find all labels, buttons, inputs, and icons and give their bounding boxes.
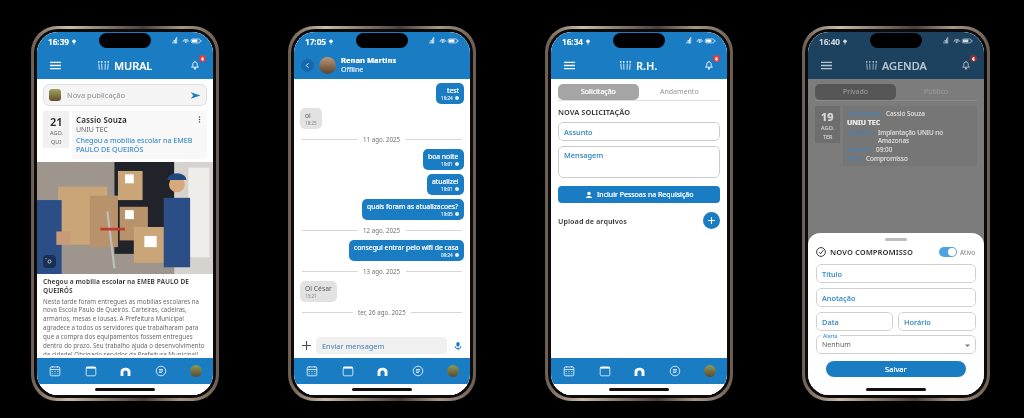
- button[interactable]: Mural: [294, 358, 330, 384]
- button[interactable]: Mural: [37, 358, 73, 384]
- staticText: Chegou a mobilia escolar na EMEB PAULO D…: [43, 277, 207, 295]
- button[interactable]: Notifications: [700, 56, 718, 74]
- staticText: Assunto:: [847, 128, 875, 137]
- staticText: Nesta tarde foram entregues as mobilias …: [43, 297, 207, 355]
- staticText: 18:25: [305, 120, 317, 126]
- button[interactable]: Notifications: [957, 56, 975, 74]
- staticText: Tipo:: [847, 154, 863, 163]
- staticText: Cassio Souza: [76, 114, 127, 125]
- button[interactable]: consegui entrar pelo wifi de casa: [349, 240, 464, 261]
- staticText: test: [447, 86, 459, 95]
- button[interactable]: Perfil: [435, 358, 470, 384]
- button[interactable]: Menu: [560, 56, 578, 74]
- button[interactable]: Anotação: [816, 288, 976, 307]
- staticText: Salvar: [885, 364, 907, 374]
- button[interactable]: Perfil: [692, 358, 727, 384]
- button[interactable]: Perfil: [178, 358, 213, 384]
- staticText: 15:21: [305, 293, 317, 299]
- button[interactable]: Assunto: [558, 122, 720, 141]
- button[interactable]: R.H.: [400, 358, 435, 384]
- button[interactable]: R.H.: [657, 358, 692, 384]
- staticText: Anotação: [822, 293, 856, 303]
- button[interactable]: Agenda: [73, 358, 108, 384]
- staticText: TER: [823, 133, 833, 140]
- button[interactable]: quais foram as atualizacoes?: [362, 199, 464, 220]
- staticText: Incluir Pessoas na Requisição: [597, 190, 694, 200]
- staticText: 4: [972, 56, 975, 62]
- button[interactable]: Agenda: [587, 358, 622, 384]
- staticText: Compromisso: [866, 154, 908, 163]
- button[interactable]: Adicionar arquivo: [703, 212, 720, 229]
- button[interactable]: 21: [43, 111, 207, 159]
- staticText: AGENDA: [882, 58, 927, 73]
- staticText: consegui entrar pelo wifi de casa: [354, 243, 459, 252]
- button[interactable]: Solicitação: [558, 84, 639, 100]
- staticText: Privado: [843, 87, 868, 97]
- staticText: Nenhum: [822, 340, 851, 350]
- button[interactable]: Nenhum: [816, 335, 976, 354]
- button[interactable]: Andamento: [639, 84, 720, 100]
- staticText: 16:39: [48, 36, 69, 47]
- button[interactable]: Incluir Pessoas na Requisição: [558, 186, 720, 203]
- button[interactable]: boa noite: [423, 149, 464, 170]
- button[interactable]: Mensagem: [558, 146, 720, 178]
- button[interactable]: Mural: [551, 358, 587, 384]
- staticText: quais foram as atualizacoes?: [367, 202, 459, 211]
- button[interactable]: atualizei: [427, 174, 464, 195]
- staticText: 17:05: [305, 36, 326, 47]
- staticText: 13 ago. 2025: [363, 267, 401, 275]
- staticText: 19:01: [441, 186, 453, 192]
- staticText: Implantação UNIU no Amazonas: [878, 128, 974, 145]
- staticText: Data: [822, 317, 839, 327]
- button[interactable]: Notifications: [186, 56, 204, 74]
- staticText: AGO.: [821, 124, 834, 131]
- button[interactable]: Salvar: [826, 361, 966, 377]
- button[interactable]: Nova publicação: [43, 84, 207, 106]
- button[interactable]: test: [436, 83, 464, 104]
- button[interactable]: Voltar: [301, 59, 314, 72]
- button[interactable]: Ativo: [939, 247, 957, 257]
- button[interactable]: R.H.: [143, 358, 178, 384]
- staticText: 19: [821, 109, 834, 124]
- staticText: 4: [715, 56, 718, 62]
- button[interactable]: Menu: [46, 56, 64, 74]
- button[interactable]: Público: [896, 84, 977, 100]
- staticText: NOVA SOLICITAÇÃO: [558, 107, 631, 117]
- staticText: UNIU TEC: [76, 125, 108, 135]
- button[interactable]: Horário: [898, 312, 976, 331]
- button[interactable]: Oi César: [300, 281, 337, 302]
- button[interactable]: Gravar áudio: [451, 339, 464, 352]
- button[interactable]: Google Lens: [43, 255, 56, 268]
- staticText: 4: [201, 56, 204, 62]
- button[interactable]: Anexar: [300, 339, 313, 352]
- staticText: 16:40: [819, 36, 840, 47]
- button[interactable]: Data: [816, 312, 893, 331]
- button[interactable]: oi: [300, 108, 322, 129]
- button[interactable]: Agenda: [330, 358, 365, 384]
- button[interactable]: Enviar mensagem: [316, 337, 447, 354]
- staticText: UNIU TEC: [847, 118, 881, 128]
- button[interactable]: Início: [108, 358, 143, 384]
- staticText: 19:05: [441, 211, 453, 217]
- staticText: NOVO COMPROMISSO: [830, 247, 914, 257]
- staticText: Nova publicação: [67, 90, 125, 100]
- staticText: 11 ago. 2025: [363, 135, 401, 143]
- button[interactable]: Mais opções: [194, 114, 204, 124]
- button[interactable]: Título: [816, 264, 976, 283]
- staticText: Horário:: [847, 145, 873, 154]
- staticText: AGO.: [50, 129, 63, 136]
- staticText: Ativo: [960, 248, 976, 257]
- staticText: Cassio Souza: [886, 109, 925, 118]
- button[interactable]: Menu: [817, 56, 835, 74]
- button[interactable]: Início: [365, 358, 400, 384]
- staticText: Andamento: [660, 87, 699, 97]
- staticText: atualizei: [432, 177, 459, 186]
- button[interactable]: Início: [622, 358, 657, 384]
- staticText: Público: [924, 87, 949, 97]
- staticText: Oi César: [305, 284, 332, 293]
- button[interactable]: Privado: [815, 84, 896, 100]
- button[interactable]: 19: [815, 106, 977, 166]
- staticText: Mensagem: [564, 150, 604, 160]
- staticText: Solicitação: [581, 87, 616, 97]
- staticText: Offline: [341, 65, 364, 75]
